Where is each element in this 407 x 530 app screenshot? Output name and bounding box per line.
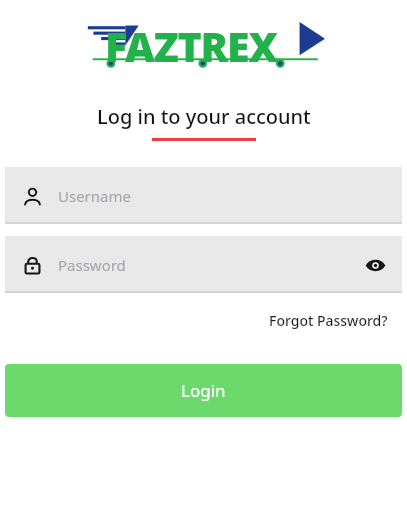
staticText: Username [58,186,131,206]
button[interactable]: Show password [362,252,388,278]
staticText: Password [58,255,126,275]
staticText: Login [181,379,226,402]
button[interactable]: Forgot Password? [250,305,407,336]
staticText: FAZTREX [105,18,277,74]
button[interactable]: Password [5,236,402,293]
button[interactable]: Username [5,167,402,224]
staticText: Log in to your account [97,103,311,130]
staticText: Forgot Password? [269,311,388,330]
button[interactable]: Login [5,364,402,417]
